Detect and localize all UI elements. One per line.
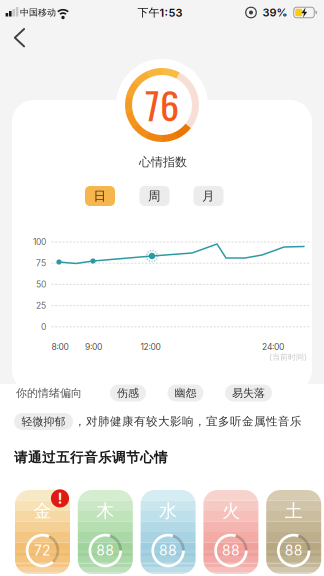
staticText: 39% [262,6,287,19]
staticText: 轻微抑郁 [21,415,65,428]
button[interactable]: 木属性音乐 [78,490,133,574]
staticText: 72 [34,542,51,559]
staticText: 88 [285,542,303,559]
button[interactable]: 日 [85,186,115,206]
staticText: ，对肺健康有较大影响，宜多听金属性音乐 [74,414,302,429]
staticText: 日 [93,188,106,204]
staticText: 水 [159,500,177,522]
staticText: 你的情绪偏向 [16,386,82,400]
staticText: ! [57,489,62,507]
button[interactable]: 周 [139,186,169,206]
staticText: (当前时间) [269,352,307,362]
button[interactable]: 水属性音乐 [141,490,196,574]
staticText: 请通过五行音乐调节心情 [14,449,168,466]
staticText: 88 [159,542,177,559]
staticText: 88 [96,542,114,559]
button[interactable]: 返回 [7,26,31,50]
staticText: 下午1:53 [137,6,182,19]
staticText: 8:00 [51,342,68,352]
staticText: 12:00 [140,342,160,352]
staticText: 9:00 [85,342,102,352]
staticText: 100 [33,237,46,247]
staticText: 76 [145,76,179,132]
button[interactable]: 土属性音乐 [266,490,321,574]
staticText: 土 [285,500,303,522]
staticText: 心情指数 [139,154,187,169]
staticText: 周 [148,188,161,204]
staticText: 75 [36,258,46,268]
staticText: 火 [222,500,240,522]
staticText: 24:00 [262,342,284,352]
staticText: 易失落 [232,386,265,400]
button[interactable]: 火属性音乐 [203,490,258,574]
staticText: 木 [96,500,114,522]
staticText: 0 [41,322,46,332]
staticText: 幽怨 [174,386,196,400]
staticText: 金 [33,500,51,522]
staticText: 88 [222,542,240,559]
staticText: 25 [36,300,46,311]
staticText: 伤感 [117,386,139,400]
button[interactable]: 金属性音乐 [15,490,70,574]
staticText: 月 [202,188,215,204]
button[interactable]: 月 [193,186,223,206]
staticText: 中国移动 [20,7,56,18]
staticText: 50 [36,279,46,290]
